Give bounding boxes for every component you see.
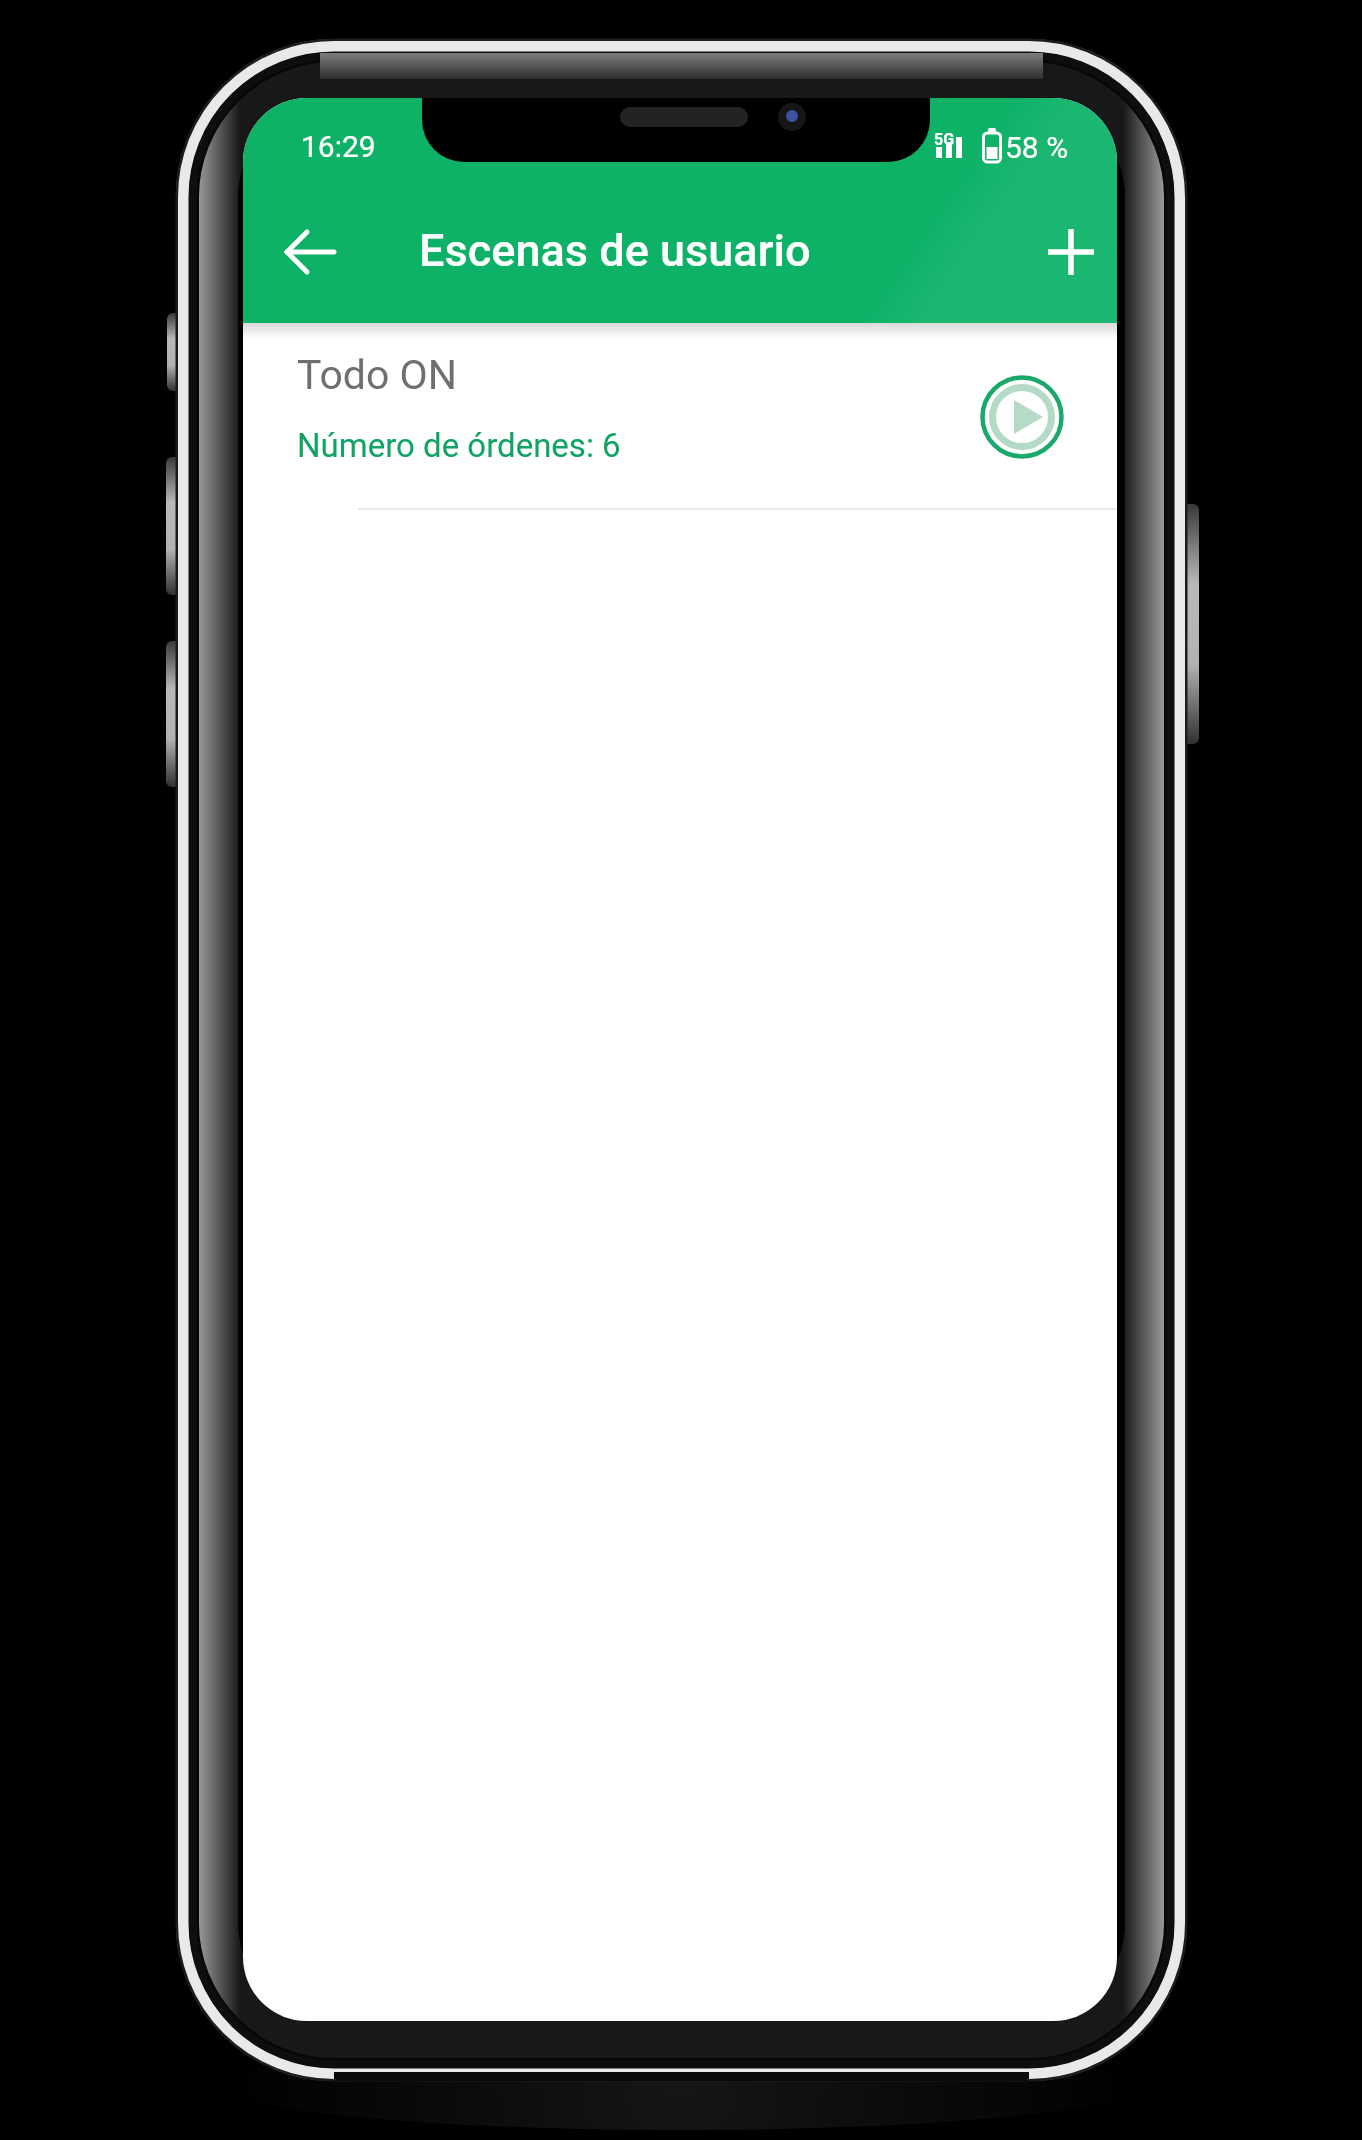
staticText: 58 % [1005, 130, 1069, 165]
staticText: Escenas de usuario [419, 224, 811, 277]
staticText: Número de órdenes: 6 [297, 426, 621, 465]
button[interactable] [1038, 219, 1104, 285]
staticText: 5G [934, 130, 955, 149]
staticText: Todo ON [297, 351, 457, 399]
button[interactable] [974, 369, 1070, 465]
staticText: 16:29 [301, 129, 376, 164]
button[interactable]: Todo ON [243, 338, 1117, 508]
button[interactable] [263, 220, 329, 286]
